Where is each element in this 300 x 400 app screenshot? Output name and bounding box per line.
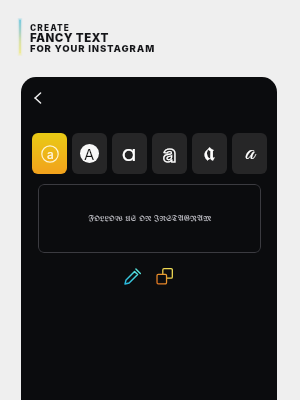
staticText: FOLLOW US ON INSTAGRAM xyxy=(88,215,212,223)
button[interactable]: A xyxy=(72,133,107,174)
staticText: a xyxy=(204,141,216,166)
button[interactable]: Edit xyxy=(121,265,143,287)
button[interactable]: Copy xyxy=(153,265,175,287)
button[interactable]: a xyxy=(192,133,227,174)
button[interactable]: a xyxy=(32,133,67,174)
staticText: a xyxy=(245,137,255,170)
button[interactable]: a xyxy=(152,133,187,174)
staticText: a xyxy=(122,141,137,166)
staticText: FANCY TEXT xyxy=(30,31,109,45)
staticText: a xyxy=(47,147,54,162)
button[interactable]: FOLLOW US ON INSTAGRAM xyxy=(38,184,261,253)
staticText: a xyxy=(163,140,177,168)
staticText: CREATE xyxy=(30,23,71,33)
staticText: FOR YOUR INSTAGRAM xyxy=(30,43,156,54)
staticText: A xyxy=(84,145,95,163)
button[interactable]: Back xyxy=(24,84,52,112)
button[interactable]: a xyxy=(112,133,147,174)
button[interactable]: a xyxy=(232,133,267,174)
